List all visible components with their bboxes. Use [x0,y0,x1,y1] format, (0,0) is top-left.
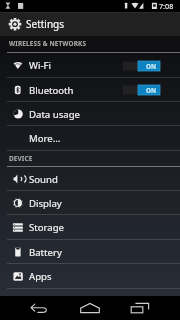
staticText: Sound [29,173,58,186]
staticText: 7:08 [159,1,174,11]
staticText: DEVICE [9,154,33,163]
button[interactable]: Battery [0,240,180,264]
staticText: Settings [26,17,65,31]
button[interactable]: Home [72,296,108,320]
staticText: Storage [29,221,64,234]
button[interactable]: Bluetooth [0,78,180,102]
staticText: Wi-Fi [29,59,51,72]
button[interactable]: Recent apps [122,296,158,320]
button[interactable]: Storage [0,215,180,240]
button[interactable]: Wi-Fi [0,53,180,78]
staticText: Battery [29,246,62,259]
staticText: Display [29,197,62,210]
staticText: More… [29,132,61,145]
staticText: Apps [29,270,52,283]
button[interactable]: Sound [0,167,180,191]
button[interactable]: Data usage [0,102,180,126]
button[interactable]: More… [0,126,180,151]
button[interactable]: Apps [0,264,180,289]
staticText: Bluetooth [29,84,74,97]
staticText: ON [146,62,156,70]
staticText: Data usage [29,108,80,121]
staticText: WIRELESS & NETWORKS [9,39,87,48]
button[interactable]: Display [0,191,180,215]
button[interactable]: Back [22,296,58,320]
button[interactable]: Settings [0,12,180,36]
staticText: ON [146,86,156,94]
